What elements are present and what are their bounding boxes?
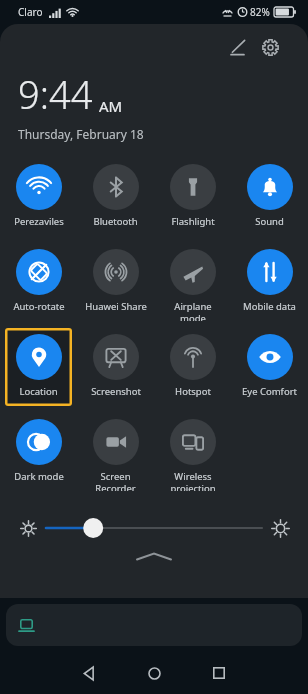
button[interactable]: Mobile data [236,243,303,321]
button[interactable]: Home [141,660,167,686]
button[interactable]: Screen Recorder [82,413,149,491]
button[interactable]: Auto-rotate [5,243,72,321]
button[interactable]: Back [76,660,102,686]
staticText: Location [19,385,58,398]
button[interactable]: Eye Comfort [236,328,303,406]
staticText: Dark mode [14,470,64,483]
staticText: Huawei Share [85,300,147,313]
staticText: Screenshot [91,385,141,398]
button[interactable]: Recents [206,660,232,686]
button[interactable]: Raise brightness [266,514,294,542]
button[interactable]: Sound [236,158,303,236]
staticText: Wireless projection [170,470,216,491]
staticText: Claro [18,5,43,19]
staticText: Sound [255,215,284,228]
button[interactable]: Wireless projection [159,413,226,491]
staticText: Mobile data [243,300,296,313]
button[interactable]: Location [5,328,72,406]
staticText: Airplane mode [174,300,212,321]
staticText: Flashlight [171,215,215,228]
button[interactable]: Brightness slider [46,516,262,540]
button[interactable]: Hotspot [159,328,226,406]
button[interactable]: Flashlight [159,158,226,236]
button[interactable]: Bluetooth [82,158,149,236]
button[interactable]: Perezaviles [5,158,72,236]
button[interactable]: Huawei Share [82,243,149,321]
staticText: Thursday, February 18 [18,126,144,142]
staticText: Perezaviles [14,215,64,228]
staticText: 9:44 [18,68,93,120]
button[interactable]: Lower brightness [14,514,42,542]
button[interactable]: Screenshot [82,328,149,406]
staticText: AM [99,96,123,116]
button[interactable]: Edit [224,34,250,60]
staticText: Eye Comfort [242,385,297,398]
button[interactable]: Dark mode [5,413,72,491]
staticText: Auto-rotate [13,300,65,313]
button[interactable]: Airplane mode [159,243,226,321]
staticText: Screen Recorder [95,470,136,491]
staticText: Bluetooth [93,215,138,228]
staticText: Hotspot [175,385,211,398]
button[interactable]: Settings [257,34,283,60]
button[interactable] [6,604,302,646]
staticText: 82% [250,5,270,19]
